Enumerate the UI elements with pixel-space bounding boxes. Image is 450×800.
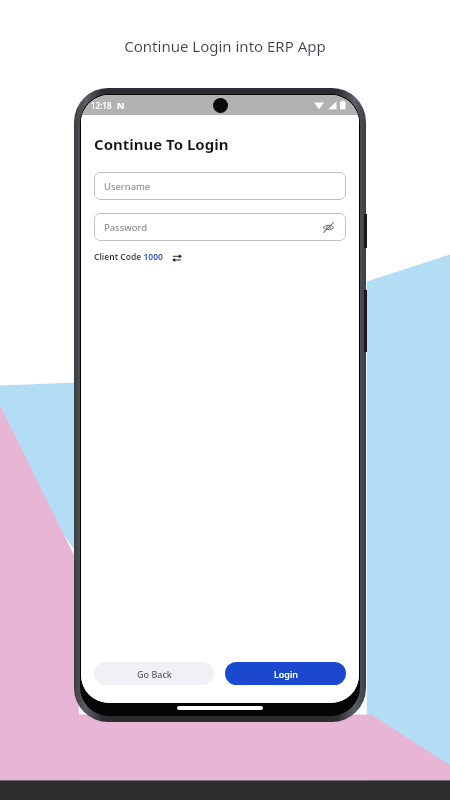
staticText: N [117, 99, 125, 111]
staticText: Continue Login into ERP App [0, 36, 450, 56]
staticText: Login [274, 668, 298, 680]
staticText: Continue To Login [94, 134, 229, 154]
button[interactable]: Show password [320, 219, 336, 235]
staticText: Username [104, 180, 151, 193]
staticText: Go Back [137, 668, 172, 680]
button[interactable]: Username [94, 172, 346, 200]
button[interactable]: Client Code 1000 [94, 250, 182, 264]
button[interactable]: Go Back [94, 662, 214, 685]
staticText: Client Code 1000 [94, 251, 163, 263]
staticText: 12:18 [91, 100, 112, 111]
button[interactable]: Login [225, 662, 346, 685]
staticText: Password [104, 221, 147, 234]
other: Switch client [171, 252, 182, 263]
button[interactable]: Password [94, 213, 346, 241]
